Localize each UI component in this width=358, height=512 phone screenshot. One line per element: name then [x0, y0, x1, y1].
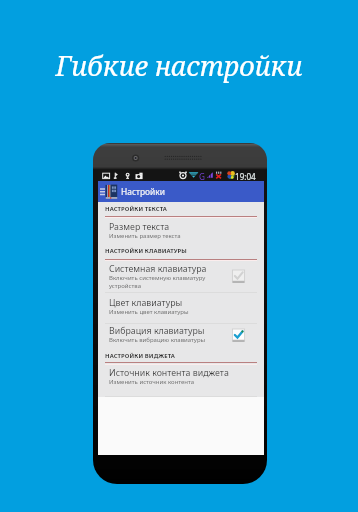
- staticText: 19:04: [235, 171, 256, 182]
- staticText: Гибкие настройки: [0, 47, 358, 84]
- staticText: Включить системную клавиатуру устройства: [109, 274, 206, 289]
- button[interactable]: Цвет клавиатуры: [98, 297, 264, 321]
- button[interactable]: Toggle Вибрация клавиатуры: [232, 329, 245, 342]
- button[interactable]: Open navigation menu: [96, 181, 109, 202]
- staticText: НАСТРОЙКИ ВИДЖЕТА: [105, 352, 175, 360]
- staticText: Изменить цвет клавиатуры: [109, 308, 189, 316]
- staticText: Включить вибрацию клавиатуры: [109, 336, 206, 344]
- staticText: Изменить источник контента: [109, 378, 195, 386]
- staticText: Системная клавиатура: [109, 263, 207, 275]
- staticText: Настройки: [121, 186, 165, 197]
- button[interactable]: Вибрация клавиатуры: [98, 325, 264, 349]
- staticText: Источник контента виджета: [109, 367, 229, 379]
- staticText: Цвет клавиатуры: [109, 297, 183, 309]
- staticText: Размер текста: [109, 221, 170, 233]
- button[interactable]: Источник контента виджета: [98, 367, 264, 391]
- button[interactable]: Системная клавиатура: [98, 263, 264, 291]
- button[interactable]: Toggle Системная клавиатура: [232, 270, 245, 283]
- staticText: Изменить размер текста: [109, 232, 181, 240]
- staticText: НАСТРОЙКИ КЛАВИАТУРЫ: [105, 247, 187, 255]
- button[interactable]: Размер текста: [98, 221, 264, 245]
- staticText: G: [199, 171, 205, 182]
- staticText: Вибрация клавиатуры: [109, 325, 205, 337]
- staticText: НАСТРОЙКИ ТЕКСТА: [105, 205, 168, 213]
- button[interactable]: Open navigation menu: [98, 181, 264, 202]
